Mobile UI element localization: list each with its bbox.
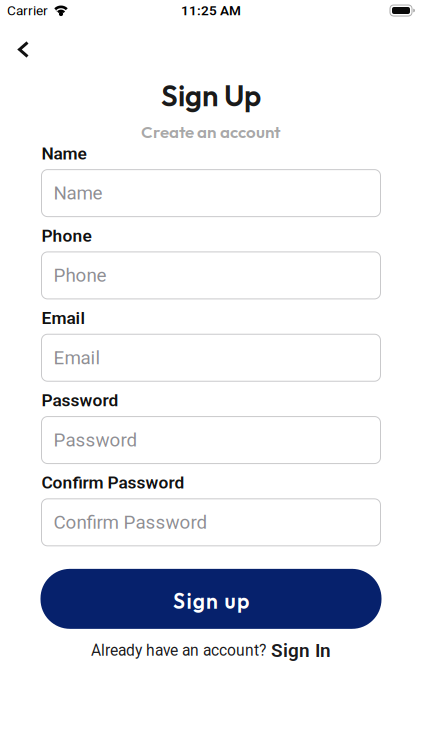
staticText: 11:25 AM: [181, 2, 241, 18]
button[interactable]: Phone: [41, 252, 380, 299]
staticText: Confirm Password: [53, 511, 207, 533]
staticText: Phone: [41, 226, 91, 246]
staticText: Confirm Password: [41, 472, 184, 493]
staticText: Email: [41, 308, 85, 328]
button[interactable]: Sign up: [40, 569, 381, 629]
staticText: Carrier: [7, 2, 48, 18]
staticText: Name: [53, 182, 102, 204]
staticText: Name: [41, 143, 86, 164]
staticText: Already have an account?: [91, 641, 266, 660]
button[interactable]: Name: [41, 170, 380, 217]
staticText: Password: [53, 429, 137, 451]
button[interactable]: Email: [41, 334, 380, 381]
button[interactable]: Back: [0, 41, 29, 58]
staticText: Phone: [53, 264, 106, 286]
staticText: Password: [41, 390, 118, 410]
staticText: Sign up: [173, 588, 249, 614]
staticText: Email: [53, 347, 100, 369]
button[interactable]: Confirm Password: [41, 499, 380, 546]
staticText: Sign In: [271, 639, 331, 662]
staticText: Create an account: [141, 121, 281, 142]
button[interactable]: Password: [41, 416, 380, 463]
button[interactable]: Already have an account?: [91, 639, 331, 662]
staticText: Sign Up: [161, 77, 261, 114]
